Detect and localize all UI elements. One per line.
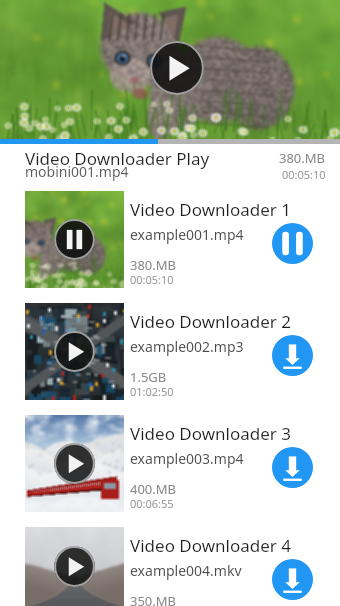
staticText: example004.mkv	[130, 561, 242, 580]
button[interactable]: Video Downloader 1	[0, 191, 340, 303]
staticText: example003.mp4	[130, 449, 244, 468]
staticText: 01:02:50	[130, 384, 174, 399]
staticText: 00:05:10	[130, 272, 174, 287]
button[interactable]: Video Downloader 4	[0, 527, 340, 606]
staticText: Video Downloader 1	[130, 198, 291, 221]
staticText: example001.mp4	[130, 225, 244, 244]
button[interactable]: Download	[272, 559, 313, 600]
button[interactable]: Pause	[272, 223, 313, 264]
button[interactable]: Video Downloader Play	[0, 144, 340, 191]
staticText: 00:05:10	[282, 167, 326, 182]
staticText: Video Downloader Play	[25, 147, 210, 170]
button[interactable]: Video Downloader 3	[0, 415, 340, 527]
staticText: 380.MB	[279, 149, 326, 167]
staticText: Video Downloader 2	[130, 310, 291, 333]
staticText: Video Downloader 3	[130, 422, 291, 445]
staticText: mobini001.mp4	[25, 162, 129, 181]
staticText: 380.MB	[130, 256, 177, 274]
staticText: 350.MB	[130, 592, 177, 606]
staticText: 00:06:55	[130, 496, 174, 511]
staticText: 400.MB	[130, 480, 177, 498]
button[interactable]: Video Downloader 2	[0, 303, 340, 415]
button[interactable]: Download	[272, 335, 313, 376]
button[interactable]: Play video	[0, 0, 340, 139]
button[interactable]: Download	[272, 447, 313, 488]
staticText: 1.5GB	[130, 368, 167, 386]
staticText: Video Downloader 4	[130, 534, 291, 557]
staticText: example002.mp3	[130, 337, 244, 356]
